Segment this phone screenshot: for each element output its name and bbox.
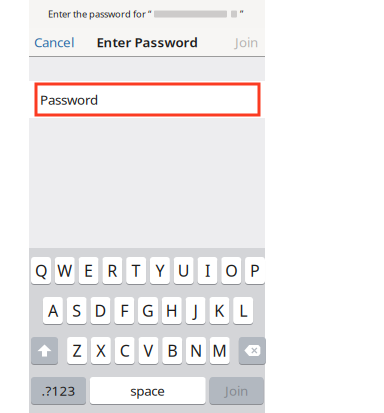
staticText: B xyxy=(167,340,177,361)
staticText: F xyxy=(120,300,128,321)
staticText: D xyxy=(94,300,106,321)
button[interactable]: E xyxy=(79,257,99,285)
staticText: W xyxy=(57,260,72,281)
button[interactable]: P xyxy=(245,257,265,285)
staticText: I xyxy=(205,260,210,281)
staticText: H xyxy=(166,300,178,321)
button[interactable]: Cancel xyxy=(30,28,78,56)
staticText: R xyxy=(107,260,117,281)
staticText: E xyxy=(84,260,93,281)
staticText: C xyxy=(120,340,130,361)
button[interactable]: M xyxy=(210,337,230,365)
button[interactable]: X xyxy=(91,337,111,365)
staticText: P xyxy=(250,260,260,281)
staticText: .?123 xyxy=(41,382,75,399)
staticText: U xyxy=(178,260,190,281)
staticText: Z xyxy=(73,340,82,361)
staticText: L xyxy=(239,300,247,321)
button[interactable]: W xyxy=(55,257,75,285)
staticText: Y xyxy=(155,260,164,281)
button[interactable]: B xyxy=(162,337,182,365)
button[interactable]: L xyxy=(233,297,253,325)
staticText: Join xyxy=(225,382,248,399)
staticText: J xyxy=(194,300,198,321)
button[interactable]: Y xyxy=(150,257,170,285)
staticText: G xyxy=(142,300,154,321)
button[interactable]: N xyxy=(186,337,206,365)
staticText: X xyxy=(96,340,105,361)
button[interactable]: V xyxy=(138,337,158,365)
button[interactable]: S xyxy=(67,297,87,325)
button[interactable]: D xyxy=(90,297,110,325)
button[interactable]: Shift xyxy=(31,337,58,365)
staticText: T xyxy=(132,260,141,281)
button[interactable]: Q xyxy=(31,257,51,285)
button[interactable]: K xyxy=(209,297,229,325)
staticText: M xyxy=(212,340,227,361)
button[interactable]: R xyxy=(102,257,122,285)
button[interactable]: G xyxy=(138,297,158,325)
button[interactable]: Join xyxy=(210,377,264,405)
staticText: Enter Password xyxy=(96,33,197,51)
button[interactable]: C xyxy=(115,337,135,365)
staticText: space xyxy=(130,382,165,399)
button[interactable]: H xyxy=(162,297,182,325)
button[interactable]: J xyxy=(186,297,206,325)
staticText: Enter the password for “ xyxy=(48,8,151,20)
staticText: Join xyxy=(235,33,258,51)
button[interactable]: T xyxy=(126,257,146,285)
button[interactable]: Join xyxy=(231,28,262,56)
button[interactable]: F xyxy=(114,297,134,325)
staticText: S xyxy=(72,300,81,321)
staticText: A xyxy=(48,300,58,321)
staticText: K xyxy=(214,300,224,321)
button[interactable]: Delete xyxy=(239,337,266,365)
staticText: O xyxy=(225,260,237,281)
button[interactable]: O xyxy=(221,257,241,285)
staticText: V xyxy=(143,340,153,361)
button[interactable]: .?123 xyxy=(31,377,86,405)
button[interactable]: A xyxy=(43,297,63,325)
button[interactable]: Z xyxy=(67,337,87,365)
staticText: ” xyxy=(240,8,243,20)
button[interactable]: space xyxy=(90,377,206,405)
staticText: Cancel xyxy=(34,33,74,51)
staticText: N xyxy=(190,340,202,361)
staticText: Password xyxy=(40,91,98,108)
staticText: Q xyxy=(35,260,47,281)
button[interactable]: U xyxy=(174,257,194,285)
button[interactable]: I xyxy=(197,257,217,285)
